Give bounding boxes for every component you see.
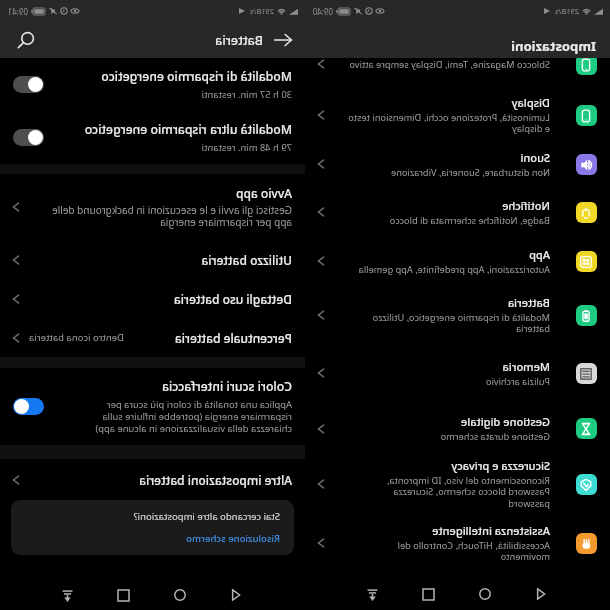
staticText: 30 h 57 min. restanti xyxy=(201,88,292,101)
staticText: Dettagli uso batteria xyxy=(173,291,292,307)
staticText: Avvio app xyxy=(236,185,292,201)
staticText: Gestione durata schermo xyxy=(440,430,550,443)
button[interactable]: Utilizzo batteria xyxy=(0,240,305,279)
button[interactable]: Toggle xyxy=(13,76,44,93)
staticText: Luminosità, Protezione occhi, Dimensioni… xyxy=(348,111,550,135)
button[interactable]: Home xyxy=(165,580,195,610)
staticText: 09:40 xyxy=(312,6,333,17)
button[interactable]: Avvio app xyxy=(0,174,305,240)
staticText: Non disturbare, Suoneria, Vibrazione xyxy=(391,166,550,179)
staticText: Batteria xyxy=(507,295,550,310)
staticText: Sblocco Magazine, Temi, Display sempre a… xyxy=(349,58,550,71)
button[interactable]: Gestione digitale xyxy=(305,402,610,455)
button[interactable]: Recent apps xyxy=(414,579,444,609)
staticText: Modalità di risparmio energetico, Utiliz… xyxy=(372,311,550,335)
staticText: Display xyxy=(511,95,550,110)
staticText: Gestisci gli avvii e le esecuzioni in ba… xyxy=(52,203,292,229)
staticText: Autorizzazioni, App predefinite, App gem… xyxy=(358,263,550,276)
staticText: Suoni xyxy=(520,150,550,165)
button[interactable]: Back xyxy=(221,580,251,610)
staticText: Notifiche xyxy=(502,198,550,213)
staticText: Memoria xyxy=(502,359,550,374)
staticText: Impostazioni xyxy=(511,37,596,55)
staticText: Applica una tonalità di colori più scura… xyxy=(95,398,292,435)
staticText: App xyxy=(529,247,550,262)
button[interactable]: App xyxy=(305,236,610,286)
staticText: Gestione digitale xyxy=(460,414,550,429)
button[interactable]: Hide navigation bar xyxy=(358,579,388,609)
staticText: Pulizia archivio xyxy=(485,375,550,388)
staticText: Riconoscimento del viso, ID impronta, Pa… xyxy=(386,474,550,510)
staticText: Dentro icona batteria xyxy=(28,331,124,344)
button[interactable]: Home xyxy=(470,579,500,609)
button[interactable]: Altre impostazioni batteria xyxy=(0,459,305,500)
staticText: Accessibilità, HiTouch, Controllo del mo… xyxy=(397,539,550,563)
button[interactable]: Sicurezza e privacy xyxy=(305,455,610,513)
button[interactable]: Modalità ultra risparmio energetico xyxy=(0,111,305,164)
staticText: Altre impostazioni batteria xyxy=(139,472,292,488)
button[interactable]: Back xyxy=(526,579,556,609)
staticText: Modalità di risparmio energetico xyxy=(101,68,292,85)
staticText: Percentuale batteria xyxy=(174,330,292,346)
button[interactable]: Display xyxy=(305,90,610,140)
staticText: Assistenza intelligente xyxy=(432,523,550,538)
staticText: Batteria xyxy=(215,32,263,49)
staticText: Colori scuri interfaccia xyxy=(161,378,292,395)
button[interactable]: Hide navigation bar xyxy=(53,580,83,610)
button[interactable]: Search xyxy=(14,28,38,52)
staticText: 09:41 xyxy=(7,6,28,17)
staticText: Badge, Notifiche schermata di blocco xyxy=(389,214,550,227)
staticText: Utilizzo batteria xyxy=(201,252,292,268)
staticText: 79 h 48 min. restanti xyxy=(201,141,292,154)
button[interactable]: Dettagli uso batteria xyxy=(0,279,305,318)
button[interactable]: Toggle xyxy=(13,129,44,146)
staticText: Stai cercando altre impostazioni? xyxy=(133,510,280,523)
staticText: Modalità ultra risparmio energetico xyxy=(84,121,292,138)
button[interactable]: Toggle xyxy=(13,398,44,415)
button[interactable]: Percentuale batteria xyxy=(0,318,305,357)
button[interactable]: Modalità di risparmio energetico xyxy=(0,58,305,111)
button[interactable]: Memoria xyxy=(305,344,610,402)
staticText: 291B/s xyxy=(249,6,274,16)
button[interactable]: Assistenza intelligente xyxy=(305,513,610,573)
button[interactable]: Recent apps xyxy=(109,580,139,610)
button[interactable]: Batteria xyxy=(305,286,610,344)
button[interactable]: Notifiche xyxy=(305,188,610,236)
button[interactable]: Back xyxy=(270,27,296,53)
staticText: Risoluzione schermo xyxy=(186,532,280,545)
button[interactable]: Risoluzione schermo xyxy=(186,532,280,545)
button[interactable]: Sblocco Magazine, Temi, Display sempre a… xyxy=(305,38,610,90)
staticText: 291B/s xyxy=(554,6,579,16)
staticText: Sicurezza e privacy xyxy=(451,458,550,473)
button[interactable]: Suoni xyxy=(305,140,610,188)
button[interactable]: Colori scuri interfaccia xyxy=(0,368,305,445)
